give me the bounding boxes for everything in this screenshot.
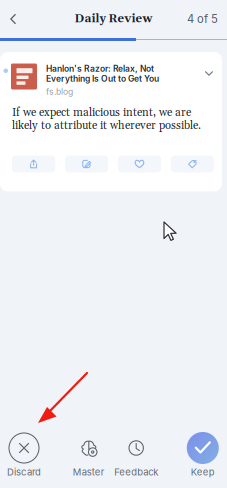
staticText: Discard <box>7 466 41 478</box>
button[interactable]: Favorite <box>118 155 161 172</box>
button[interactable]: Collapse <box>200 64 218 82</box>
staticText: fs.blog <box>46 86 73 97</box>
button[interactable]: Keep <box>179 430 227 478</box>
staticText: Hanlon's Razor: Relax, Not <box>46 63 154 74</box>
button[interactable]: Back <box>0 0 26 38</box>
button[interactable]: Discard <box>0 430 48 478</box>
staticText: Keep <box>191 466 215 478</box>
staticText: Everything Is Out to Get You <box>46 73 159 84</box>
staticText: likely to attribute it wherever possible… <box>12 118 201 133</box>
button[interactable]: 4 of 5 <box>187 0 227 38</box>
staticText: If we expect malicious intent, we are <box>12 105 191 120</box>
button[interactable]: Master <box>65 430 113 478</box>
staticText: Master <box>73 466 105 478</box>
staticText: Daily Review <box>74 12 152 26</box>
staticText: 4 of 5 <box>187 12 218 26</box>
button[interactable]: Edit <box>65 155 108 172</box>
button[interactable]: Feedback <box>112 430 160 478</box>
button[interactable]: Tag <box>171 155 214 172</box>
button[interactable]: Share <box>12 155 55 172</box>
staticText: Feedback <box>114 466 158 478</box>
